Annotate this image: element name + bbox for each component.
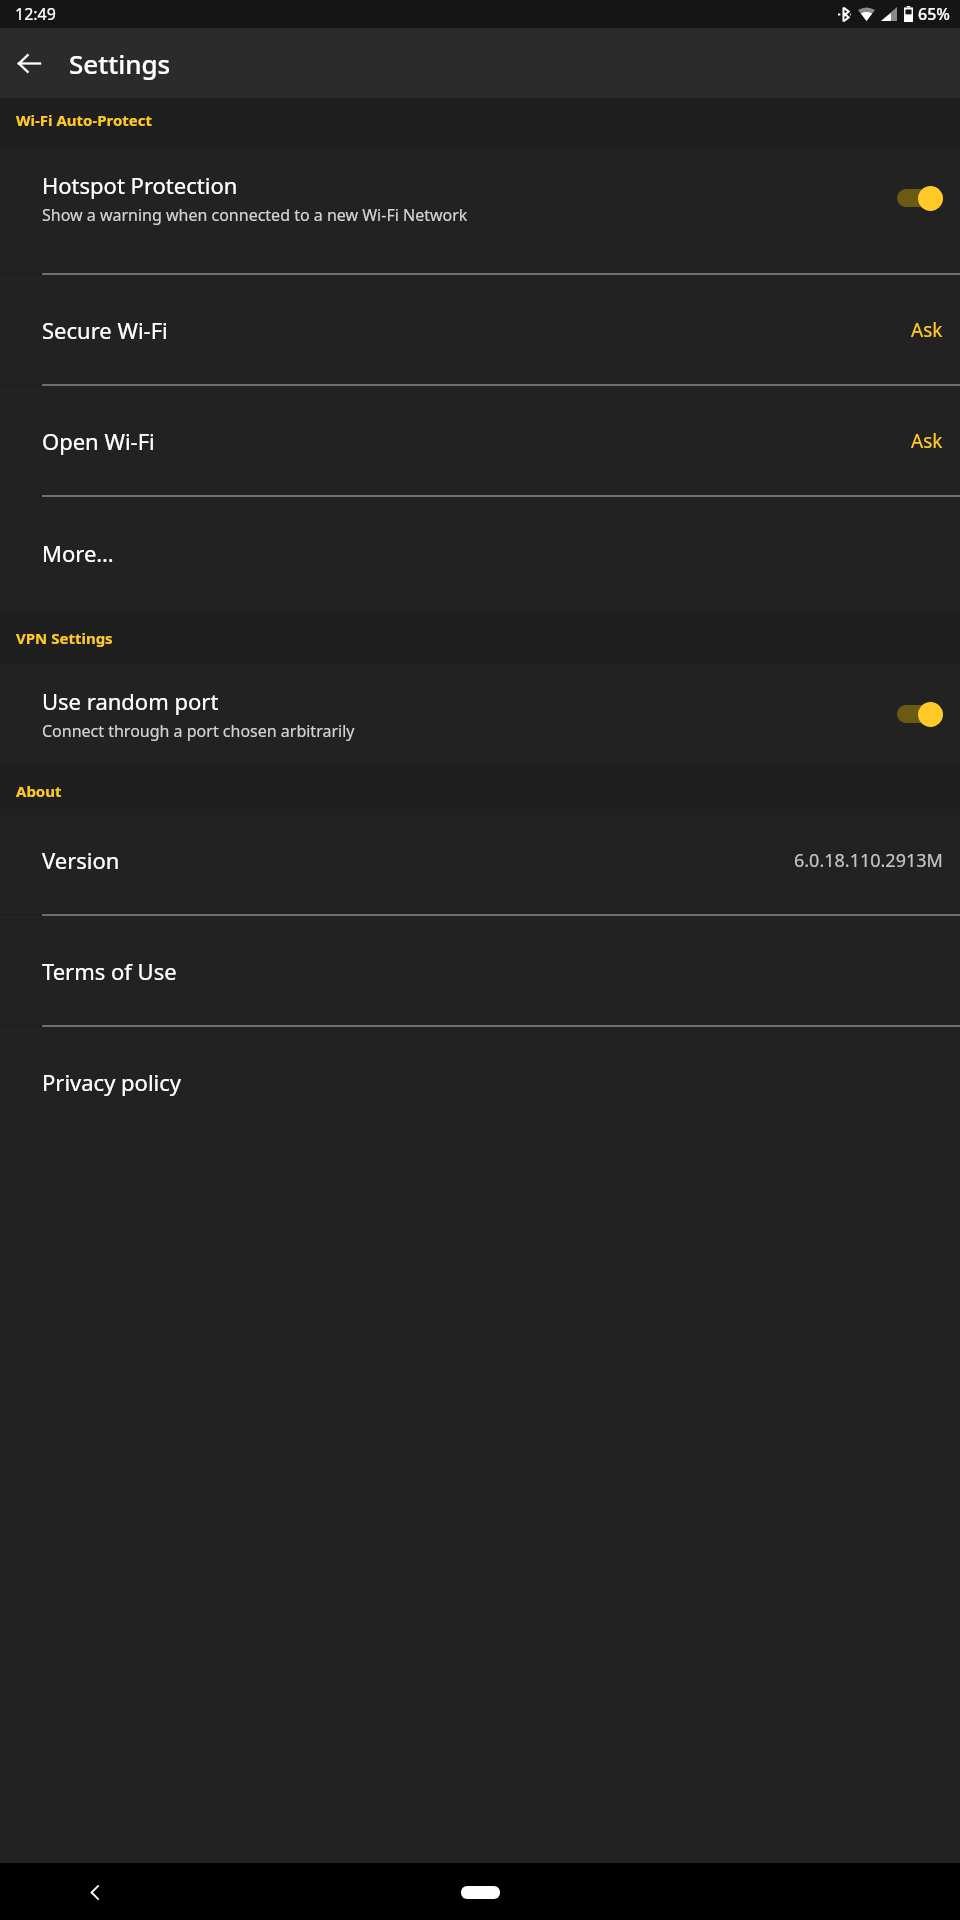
staticText: Hotspot Protection — [42, 170, 238, 200]
button[interactable]: Privacy policy — [0, 1037, 960, 1127]
button[interactable]: Version — [0, 815, 960, 905]
staticText: 12:49 — [15, 3, 56, 25]
button[interactable]: Home — [449, 1879, 511, 1905]
staticText: Connect through a port chosen arbitraril… — [42, 720, 355, 742]
button[interactable]: Back — [78, 1875, 112, 1909]
button[interactable]: Secure Wi-Fi — [0, 285, 960, 375]
staticText: Show a warning when connected to a new W… — [42, 204, 468, 226]
button[interactable]: Use random port — [0, 664, 960, 764]
staticText: Ask — [911, 317, 943, 343]
button[interactable]: Hotspot Protection — [0, 148, 960, 248]
staticText: VPN Settings — [16, 628, 113, 648]
staticText: Use random port — [42, 686, 219, 716]
button[interactable]: Back — [0, 34, 58, 92]
staticText: Ask — [911, 428, 943, 454]
staticText: Privacy policy — [42, 1067, 943, 1097]
staticText: Version — [42, 845, 794, 875]
staticText: More… — [42, 538, 943, 568]
staticText: Terms of Use — [42, 956, 943, 986]
staticText: Secure Wi-Fi — [42, 315, 911, 345]
staticText: Open Wi-Fi — [42, 426, 911, 456]
staticText: Wi-Fi Auto-Protect — [16, 110, 153, 130]
button[interactable]: Open Wi-Fi — [0, 396, 960, 486]
staticText: 6.0.18.110.2913M — [794, 848, 943, 873]
staticText: 65% — [918, 3, 950, 25]
button[interactable]: More… — [0, 508, 960, 598]
staticText: About — [16, 781, 62, 801]
staticText: Settings — [69, 46, 171, 81]
button[interactable]: Terms of Use — [0, 926, 960, 1016]
